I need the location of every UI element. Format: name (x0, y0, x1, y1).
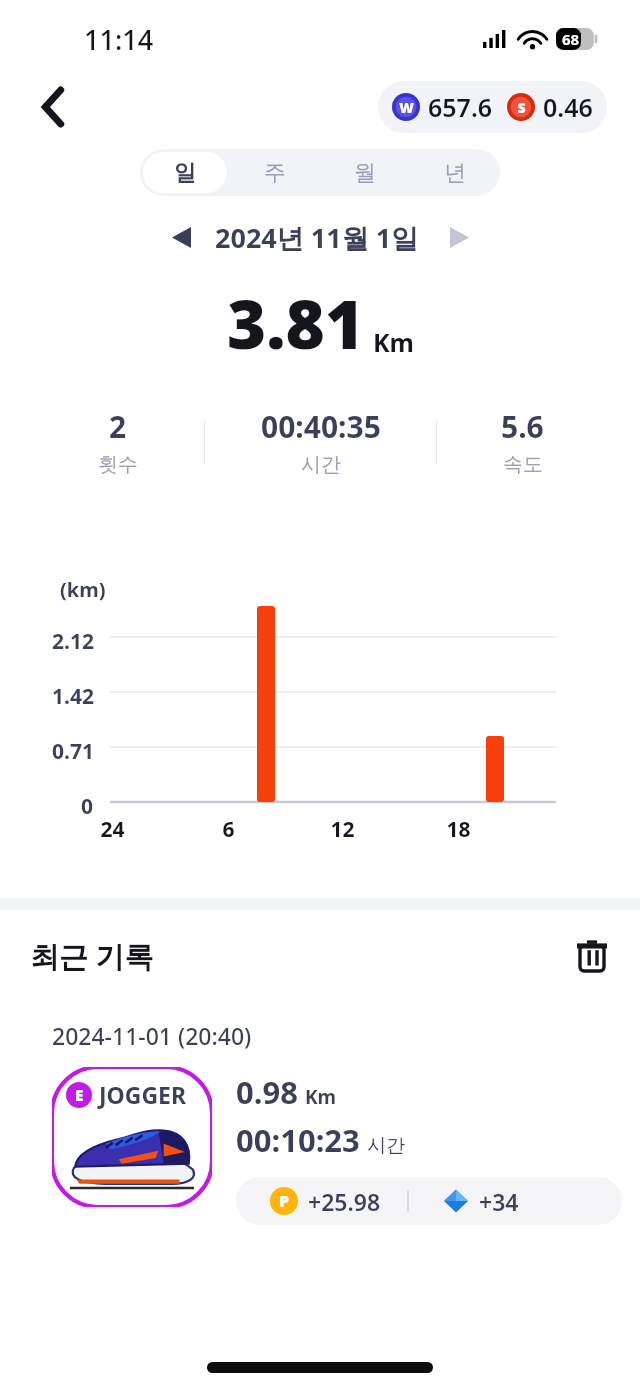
staticText: 1.42 (52, 682, 94, 711)
button[interactable]: 년 (413, 152, 497, 193)
staticText: 0.46 (543, 90, 593, 124)
staticText: 6 (222, 815, 235, 844)
staticText: P (279, 1190, 290, 1212)
staticText: 00:10:23 (236, 1119, 360, 1161)
button[interactable]: 2 (32, 383, 608, 500)
staticText: +25.98 (308, 1186, 381, 1217)
staticText: 18 (446, 815, 471, 844)
staticText: 0.71 (52, 737, 94, 766)
button[interactable]: P (236, 1177, 622, 1225)
staticText: Km (373, 325, 414, 359)
staticText: 횟수 (98, 452, 138, 477)
button[interactable]: W (378, 81, 607, 133)
button[interactable]: 2024-11-01 (20:40) (30, 1002, 622, 1285)
staticText: 657.6 (428, 90, 493, 124)
staticText: 시간 (301, 452, 341, 477)
staticText: 2024년 11월 1일 (215, 219, 419, 256)
staticText: (km) (60, 576, 106, 603)
button[interactable]: 일 (143, 152, 227, 193)
button[interactable]: 주 (233, 152, 317, 193)
staticText: 주 (264, 159, 286, 187)
staticText: E (75, 1085, 84, 1105)
button[interactable]: Back (28, 81, 80, 133)
staticText: 2 (109, 406, 127, 447)
staticText: 최근 기록 (30, 936, 154, 976)
staticText: W (399, 98, 414, 117)
staticText: 0 (81, 792, 94, 821)
staticText: S (517, 98, 526, 117)
staticText: +34 (479, 1186, 519, 1217)
staticText: 일 (174, 159, 196, 187)
staticText: 시간 (367, 1134, 405, 1158)
button[interactable]: Delete records (566, 930, 618, 982)
staticText: 월 (354, 159, 376, 187)
staticText: JOGGER (99, 1079, 187, 1110)
staticText: 11:14 (84, 21, 154, 58)
staticText: 0.98 (236, 1071, 298, 1113)
staticText: 속도 (503, 452, 543, 477)
staticText: 00:40:35 (261, 406, 381, 447)
button[interactable]: Previous day (159, 215, 203, 259)
staticText: 년 (444, 159, 466, 187)
staticText: 24 (100, 815, 125, 844)
button[interactable]: Next day (437, 215, 481, 259)
staticText: 5.6 (501, 406, 544, 447)
button[interactable]: 월 (323, 152, 407, 193)
staticText: 12 (330, 815, 355, 844)
staticText: 68 (562, 29, 580, 49)
staticText: 3.81 (227, 277, 365, 368)
staticText: 2024-11-01 (20:40) (52, 1020, 252, 1051)
staticText: 2.12 (52, 627, 94, 656)
staticText: Km (305, 1084, 337, 1110)
